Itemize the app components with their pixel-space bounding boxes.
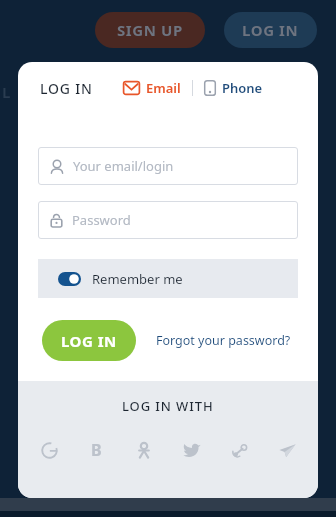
button[interactable]: LOG IN [224,12,317,48]
button[interactable]: Password [38,201,298,239]
staticText: Remember me [92,270,183,288]
staticText: Phone [222,79,263,97]
button[interactable]: LOG IN [42,320,136,361]
staticText: L [2,82,11,102]
button[interactable]: Telegram [270,433,304,467]
staticText: Email [146,79,181,97]
button[interactable]: VK [79,433,113,467]
staticText: LOG IN [61,331,117,351]
staticText: Password [72,211,131,229]
staticText: Your email/login [73,157,174,175]
staticText: SIGN UP [117,20,183,40]
staticText: B [91,439,102,461]
staticText: LOG IN [40,79,93,98]
button[interactable]: Remember me [38,259,298,298]
button[interactable]: Your email/login [38,147,298,185]
staticText: LOG IN WITH [122,397,214,415]
button[interactable]: Twitter [175,433,209,467]
button[interactable]: SIGN UP [95,12,205,48]
staticText: Forgot your password? [156,332,291,349]
button[interactable]: Steam [223,433,257,467]
button[interactable]: Forgot your password? [156,326,291,355]
button[interactable]: Odnoklassniki [127,433,161,467]
button[interactable]: Google [32,433,66,467]
button[interactable]: Phone [202,75,265,101]
button[interactable]: Email [121,75,183,101]
staticText: LOG IN [242,20,299,40]
